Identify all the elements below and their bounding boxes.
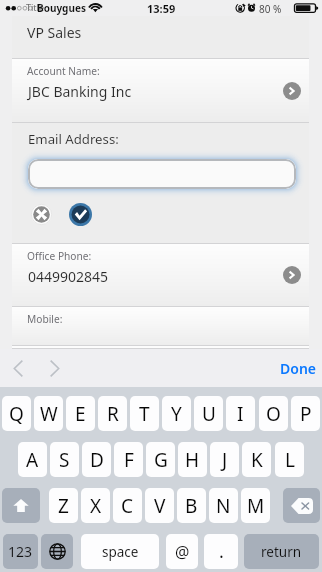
staticText: X bbox=[90, 493, 102, 519]
button[interactable]: L bbox=[275, 442, 304, 477]
button[interactable]: P bbox=[291, 396, 320, 431]
staticText: Email Address: bbox=[28, 130, 119, 148]
staticText: U bbox=[202, 401, 216, 427]
button[interactable]: Done bbox=[268, 349, 322, 387]
button[interactable]: B bbox=[177, 488, 206, 523]
button[interactable]: H bbox=[178, 442, 207, 477]
staticText: S bbox=[59, 447, 70, 473]
staticText: P bbox=[300, 401, 312, 427]
staticText: Bouygues bbox=[37, 1, 86, 15]
staticText: B bbox=[185, 493, 198, 519]
staticText: Y bbox=[171, 401, 182, 427]
staticText: A bbox=[26, 447, 39, 473]
button[interactable]: V bbox=[145, 488, 174, 523]
button[interactable]: Cancel bbox=[31, 204, 52, 225]
button[interactable]: space bbox=[81, 534, 159, 569]
staticText: J bbox=[222, 447, 228, 473]
button[interactable]: N bbox=[209, 488, 238, 523]
button[interactable]: Z bbox=[49, 488, 78, 523]
button[interactable]: VP Sales bbox=[12, 16, 309, 58]
staticText: space bbox=[102, 543, 139, 561]
staticText: W bbox=[40, 401, 58, 427]
staticText: D bbox=[90, 447, 104, 473]
staticText: V bbox=[154, 493, 166, 519]
staticText: 123 bbox=[8, 542, 33, 561]
button[interactable]: K bbox=[242, 442, 271, 477]
button[interactable]: A bbox=[18, 442, 47, 477]
button[interactable]: Q bbox=[2, 396, 31, 431]
button[interactable]: Switch keyboard bbox=[41, 534, 73, 569]
button[interactable]: E bbox=[66, 396, 95, 431]
staticText: T bbox=[139, 401, 150, 427]
staticText: M bbox=[247, 493, 265, 519]
button[interactable]: X bbox=[81, 488, 110, 523]
staticText: VP Sales bbox=[27, 23, 82, 42]
button[interactable]: U bbox=[194, 396, 223, 431]
button[interactable]: Shift bbox=[2, 488, 40, 523]
button[interactable]: Backspace bbox=[283, 488, 320, 523]
staticText: Z bbox=[58, 493, 69, 519]
staticText: Q bbox=[9, 401, 24, 427]
staticText: O bbox=[266, 401, 281, 427]
button[interactable]: R bbox=[98, 396, 127, 431]
staticText: L bbox=[285, 447, 295, 473]
staticText: @ bbox=[175, 541, 190, 563]
staticText: N bbox=[216, 493, 231, 519]
button[interactable]: G bbox=[146, 442, 175, 477]
button[interactable]: J bbox=[210, 442, 239, 477]
staticText: Office Phone: bbox=[27, 249, 92, 263]
button[interactable]: S bbox=[50, 442, 79, 477]
button[interactable]: O bbox=[259, 396, 288, 431]
button[interactable]: M bbox=[241, 488, 270, 523]
button[interactable]: Open detail bbox=[283, 82, 301, 100]
staticText: Account Name: bbox=[27, 64, 100, 78]
button[interactable]: W bbox=[34, 396, 63, 431]
button[interactable]: @ bbox=[166, 534, 198, 569]
staticText: 0449902845 bbox=[28, 267, 109, 286]
button[interactable]: Account Name: bbox=[12, 59, 309, 122]
staticText: 80 % bbox=[259, 2, 282, 16]
button[interactable]: return bbox=[244, 534, 319, 569]
staticText: return bbox=[261, 543, 302, 561]
staticText: Done bbox=[280, 359, 317, 378]
staticText: K bbox=[251, 447, 263, 473]
button[interactable]: I bbox=[226, 396, 255, 431]
button[interactable]: Previous field bbox=[4, 349, 32, 387]
button[interactable]: T bbox=[130, 396, 159, 431]
button[interactable]: F bbox=[114, 442, 143, 477]
button[interactable]: C bbox=[113, 488, 142, 523]
staticText: F bbox=[124, 447, 134, 473]
button[interactable]: Open detail bbox=[283, 266, 301, 284]
button[interactable]: 123 bbox=[3, 534, 38, 569]
staticText: C bbox=[121, 493, 134, 519]
staticText: Mobile: bbox=[27, 312, 63, 326]
button[interactable]: Confirm bbox=[69, 203, 92, 226]
button[interactable]: Next field bbox=[40, 349, 68, 387]
button[interactable]: Mobile: bbox=[12, 307, 309, 345]
staticText: E bbox=[75, 401, 86, 427]
staticText: 13:59 bbox=[147, 1, 176, 16]
staticText: . bbox=[219, 539, 224, 564]
button[interactable]: . bbox=[204, 534, 238, 569]
staticText: I bbox=[237, 401, 244, 427]
staticText: R bbox=[107, 401, 119, 427]
staticText: Title bbox=[26, 1, 44, 13]
button[interactable]: D bbox=[82, 442, 111, 477]
staticText: JBC Banking Inc bbox=[28, 82, 132, 101]
button[interactable]: Y bbox=[162, 396, 191, 431]
staticText: H bbox=[185, 447, 200, 473]
button[interactable]: Office Phone: bbox=[12, 244, 309, 306]
staticText: G bbox=[154, 447, 168, 473]
button[interactable] bbox=[28, 159, 296, 189]
